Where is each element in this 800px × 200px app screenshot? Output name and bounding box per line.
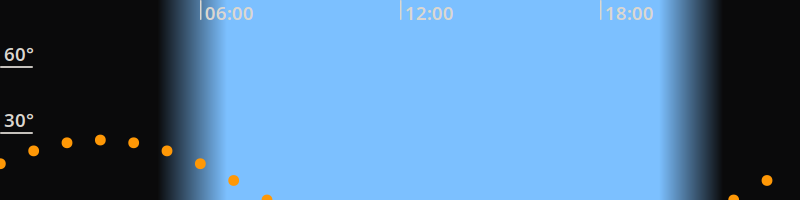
staticText: 18:00 (605, 0, 654, 25)
staticText: 30° (4, 107, 34, 132)
staticText: 06:00 (205, 0, 254, 25)
staticText: 60° (4, 41, 34, 66)
staticText: 12:00 (405, 0, 454, 25)
